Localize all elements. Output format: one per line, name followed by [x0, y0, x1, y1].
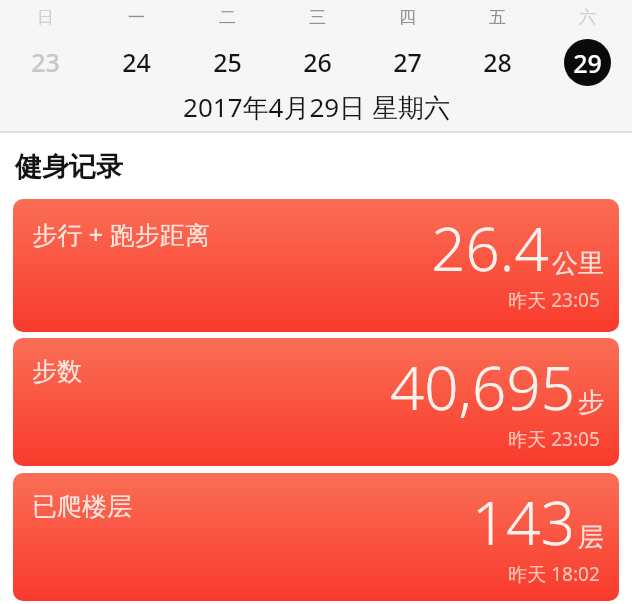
staticText: 2017年4月29日 星期六 [183, 89, 450, 125]
button[interactable]: 29 [542, 37, 632, 87]
button[interactable]: 27 [362, 37, 452, 87]
staticText: 29 [573, 46, 602, 80]
button[interactable]: 已爬楼层 [13, 473, 619, 601]
button[interactable]: 25 [182, 37, 272, 87]
staticText: 27 [393, 45, 422, 79]
staticText: 26 [303, 45, 332, 79]
staticText: 公里 [552, 247, 604, 280]
staticText: 28 [483, 45, 512, 79]
staticText: 六 [579, 7, 596, 28]
staticText: 层 [578, 521, 604, 554]
button[interactable]: 步数 [13, 338, 619, 466]
staticText: 日 [37, 7, 54, 28]
button[interactable]: 24 [91, 37, 182, 87]
staticText: 昨天 18:02 [508, 561, 600, 587]
staticText: 健身记录 [15, 150, 123, 184]
button[interactable]: 23 [0, 37, 91, 87]
staticText: 143 [472, 481, 575, 563]
staticText: 步数 [32, 356, 82, 387]
staticText: 步 [578, 386, 604, 419]
button[interactable]: 步行 + 跑步距离 [13, 199, 619, 332]
staticText: 二 [219, 7, 236, 28]
staticText: 五 [489, 7, 506, 28]
staticText: 四 [399, 7, 416, 28]
staticText: 已爬楼层 [32, 491, 132, 522]
staticText: 一 [128, 7, 145, 28]
staticText: 三 [309, 7, 326, 28]
staticText: 25 [213, 45, 242, 79]
staticText: 40,695 [390, 346, 575, 428]
button[interactable]: 26 [272, 37, 362, 87]
staticText: 步行 + 跑步距离 [32, 217, 210, 251]
staticText: 昨天 23:05 [508, 287, 600, 313]
button[interactable]: 28 [452, 37, 542, 87]
staticText: 24 [122, 45, 151, 79]
staticText: 23 [31, 45, 60, 79]
staticText: 昨天 23:05 [508, 426, 600, 452]
staticText: 26.4 [431, 207, 549, 289]
